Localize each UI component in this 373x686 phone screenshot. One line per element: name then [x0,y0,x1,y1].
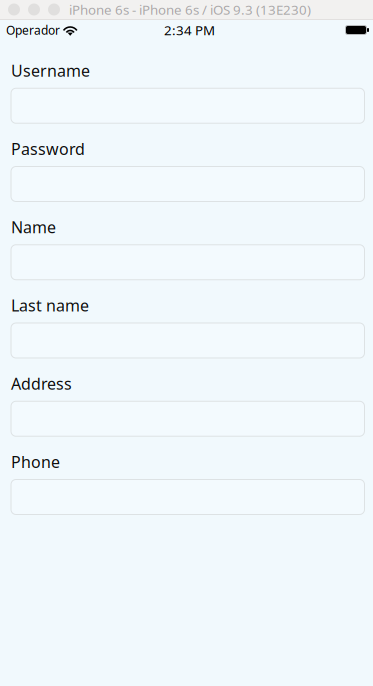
button[interactable]: Username [11,88,364,123]
staticText: Password [11,138,85,159]
button[interactable]: Last name [11,323,364,358]
staticText: Address [11,373,72,394]
staticText: Last name [11,295,89,316]
staticText: Username [11,60,90,81]
button[interactable]: Name [11,245,364,280]
staticText: Phone [11,451,60,472]
staticText: 2:34 PM [164,21,215,39]
staticText: Operador [6,22,60,38]
button[interactable]: Password [11,166,364,201]
button[interactable]: Address [11,401,364,436]
staticText: iPhone 6s - iPhone 6s / iOS 9.3 (13E230) [69,1,311,18]
staticText: Name [11,216,56,238]
